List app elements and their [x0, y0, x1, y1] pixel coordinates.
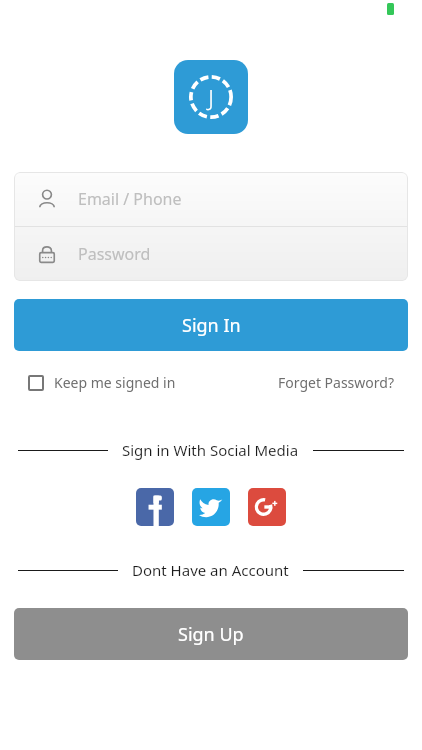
- staticText: Dont Have an Account: [132, 560, 289, 580]
- button[interactable]: Keep me signed in: [28, 373, 176, 392]
- staticText: Password: [78, 243, 151, 265]
- button[interactable]: Facebook: [136, 488, 174, 526]
- button[interactable]: Twitter: [192, 488, 230, 526]
- button[interactable]: App logo: [174, 60, 248, 134]
- staticText: J: [208, 82, 214, 112]
- button[interactable]: Password: [14, 227, 408, 281]
- button[interactable]: Google Plus: [248, 488, 286, 526]
- button[interactable]: Sign Up: [14, 608, 408, 660]
- button[interactable]: Sign In: [14, 299, 408, 351]
- staticText: Sign in With Social Media: [122, 440, 299, 460]
- staticText: Email / Phone: [78, 188, 182, 210]
- staticText: Forget Password?: [278, 373, 394, 392]
- button[interactable]: Forget Password?: [278, 373, 394, 392]
- staticText: Sign In: [182, 313, 241, 338]
- staticText: Sign Up: [178, 622, 244, 647]
- staticText: Keep me signed in: [54, 373, 176, 392]
- button[interactable]: Email / Phone: [14, 172, 408, 226]
